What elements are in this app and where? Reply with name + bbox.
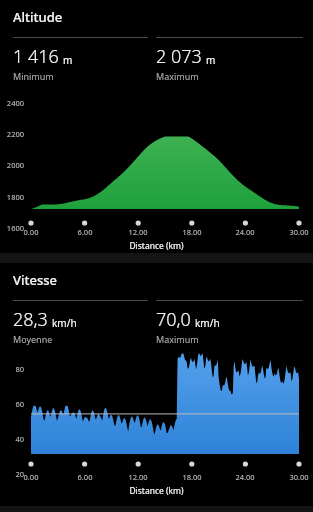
staticText: Minimum [13, 70, 54, 82]
staticText: 18.00 [175, 472, 209, 482]
staticText: 28,3 [13, 307, 48, 332]
button[interactable]: 70,0 [156, 300, 303, 345]
staticText: Maximum [156, 333, 199, 345]
button[interactable]: 28,3 [13, 300, 148, 345]
staticText: km/h [52, 316, 77, 330]
staticText: 18.00 [175, 227, 209, 237]
staticText: 24.00 [228, 227, 262, 237]
staticText: 70,0 [156, 307, 191, 332]
staticText: 1 416 [13, 44, 59, 69]
staticText: km/h [195, 316, 220, 330]
staticText: 12.00 [121, 227, 155, 237]
staticText: 24.00 [228, 472, 262, 482]
staticText: 6.00 [68, 472, 102, 482]
staticText: 30.00 [282, 472, 313, 482]
staticText: Vitesse [13, 271, 58, 289]
button[interactable]: Altitude profile chart [0, 91, 313, 253]
staticText: m [206, 53, 216, 67]
button[interactable]: Altitude [0, 0, 313, 253]
staticText: 1800 [0, 192, 24, 202]
staticText: 6.00 [68, 227, 102, 237]
staticText: 12.00 [121, 472, 155, 482]
staticText: Maximum [156, 70, 199, 82]
staticText: 20 [0, 469, 24, 479]
staticText: m [63, 53, 73, 67]
staticText: 2000 [0, 160, 24, 170]
staticText: 40 [0, 434, 24, 444]
staticText: 60 [0, 399, 24, 409]
staticText: 80 [0, 364, 24, 374]
staticText: Distance (km) [0, 240, 313, 252]
button[interactable]: Vitesse [0, 263, 313, 506]
staticText: 0.00 [14, 227, 48, 237]
staticText: 1400 [0, 254, 24, 264]
staticText: 2200 [0, 129, 24, 139]
button[interactable]: 1 416 [13, 37, 148, 82]
staticText: Distance (km) [0, 485, 313, 497]
staticText: 1600 [0, 223, 24, 233]
staticText: Moyenne [13, 333, 53, 345]
staticText: Altitude [13, 8, 63, 26]
button[interactable]: 2 073 [156, 37, 303, 82]
staticText: 2400 [0, 98, 24, 108]
staticText: 30.00 [282, 227, 313, 237]
button[interactable]: Speed profile chart [0, 354, 313, 506]
staticText: 0.00 [14, 472, 48, 482]
staticText: 2 073 [156, 44, 202, 69]
